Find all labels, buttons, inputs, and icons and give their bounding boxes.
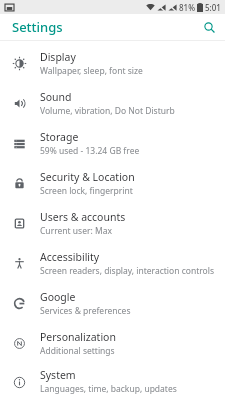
staticText: System: [40, 368, 76, 382]
button[interactable]: Search settings: [199, 17, 219, 37]
staticText: Wallpaper, sleep, font size: [40, 65, 143, 77]
staticText: 59% used - 13.24 GB free: [40, 145, 140, 157]
staticText: Services & preferences: [40, 305, 131, 317]
staticText: Security & Location: [40, 170, 135, 184]
staticText: Settings: [12, 18, 63, 36]
staticText: Accessibility: [40, 250, 100, 264]
staticText: Screen readers, display, interaction con…: [40, 265, 214, 277]
staticText: Storage: [40, 130, 79, 144]
button[interactable]: Google: [0, 283, 225, 323]
staticText: 5:01: [205, 2, 221, 13]
staticText: Users & accounts: [40, 210, 126, 224]
staticText: Display: [40, 50, 76, 64]
button[interactable]: Users & accounts: [0, 203, 225, 243]
staticText: Personalization: [40, 330, 116, 344]
staticText: Additional settings: [40, 345, 115, 357]
button[interactable]: Display: [0, 43, 225, 83]
button[interactable]: Storage: [0, 123, 225, 163]
staticText: 81%: [179, 2, 195, 13]
staticText: Sound: [40, 90, 72, 104]
button[interactable]: Security & Location: [0, 163, 225, 203]
staticText: Google: [40, 290, 76, 304]
staticText: Volume, vibration, Do Not Disturb: [40, 105, 175, 117]
button[interactable]: Accessibility: [0, 243, 225, 283]
staticText: Languages, time, backup, updates: [40, 383, 177, 395]
button[interactable]: Personalization: [0, 323, 225, 363]
staticText: Current user: Max: [40, 225, 112, 237]
button[interactable]: System: [0, 363, 225, 400]
button[interactable]: Sound: [0, 83, 225, 123]
staticText: Screen lock, fingerprint: [40, 185, 133, 197]
